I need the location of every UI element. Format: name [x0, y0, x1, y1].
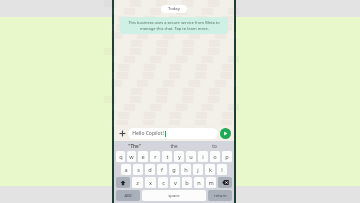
button[interactable]: a — [121, 164, 131, 175]
staticText: manage this chat. Tap to learn more. — [140, 26, 209, 31]
staticText: v — [174, 179, 177, 187]
button[interactable]: w — [127, 151, 136, 162]
staticText: This business uses a secure service from… — [128, 20, 220, 25]
button[interactable]: q — [116, 151, 125, 162]
staticText: the — [170, 143, 178, 149]
staticText: Today — [168, 6, 180, 12]
button[interactable]: to — [194, 141, 234, 150]
button[interactable]: g — [169, 164, 179, 175]
staticText: s — [137, 166, 140, 174]
staticText: space — [168, 193, 180, 199]
staticText: return — [214, 193, 227, 199]
button[interactable]: j — [193, 164, 203, 175]
button[interactable]: d — [145, 164, 155, 175]
staticText: f — [161, 166, 163, 174]
staticText: t — [166, 153, 169, 161]
button[interactable]: t — [162, 151, 172, 162]
button[interactable]: the — [154, 141, 194, 150]
staticText: to — [212, 143, 217, 149]
staticText: q — [119, 153, 123, 161]
button[interactable]: k — [205, 164, 215, 175]
staticText: x — [149, 179, 152, 187]
staticText: p — [225, 153, 229, 161]
button[interactable]: h — [181, 164, 191, 175]
staticText: g — [172, 166, 176, 174]
staticText: u — [189, 153, 193, 161]
staticText: j — [197, 166, 199, 174]
button[interactable]: Attach — [117, 128, 128, 139]
staticText: h — [184, 166, 188, 174]
button[interactable]: n — [194, 177, 204, 188]
button[interactable]: Hello Copilot! — [128, 128, 218, 139]
button[interactable]: c — [158, 177, 168, 188]
button[interactable]: x — [145, 177, 156, 188]
button[interactable]: "The" — [114, 141, 154, 150]
button[interactable]: v — [170, 177, 180, 188]
button[interactable]: Backspace — [218, 177, 232, 188]
button[interactable]: z — [132, 177, 143, 188]
staticText: z — [136, 179, 139, 187]
button[interactable]: Shift — [116, 177, 130, 188]
button[interactable]: Send — [220, 128, 231, 139]
staticText: y — [178, 153, 181, 161]
staticText: i — [202, 153, 204, 161]
staticText: c — [162, 179, 165, 187]
button[interactable]: b — [182, 177, 192, 188]
button[interactable]: This business uses a secure service from… — [120, 17, 228, 34]
staticText: r — [154, 153, 157, 161]
button[interactable]: u — [186, 151, 196, 162]
staticText: a — [124, 166, 128, 174]
staticText: k — [209, 166, 212, 174]
button[interactable]: m — [206, 177, 216, 188]
staticText: n — [197, 179, 201, 187]
button[interactable]: l — [217, 164, 227, 175]
button[interactable]: e — [138, 151, 148, 162]
staticText: d — [148, 166, 152, 174]
staticText: o — [213, 153, 217, 161]
staticText: Hello Copilot! — [132, 130, 164, 137]
staticText: w — [129, 153, 134, 161]
button[interactable]: p — [222, 151, 232, 162]
staticText: m — [208, 179, 214, 187]
staticText: l — [221, 166, 223, 174]
staticText: e — [141, 153, 145, 161]
button[interactable]: space — [142, 190, 206, 201]
staticText: "The" — [128, 143, 141, 149]
button[interactable]: i — [198, 151, 208, 162]
button[interactable]: o — [210, 151, 220, 162]
button[interactable]: ABC — [116, 190, 140, 201]
button[interactable]: return — [208, 190, 232, 201]
staticText: ABC — [124, 193, 133, 199]
button[interactable]: s — [133, 164, 143, 175]
staticText: b — [185, 179, 189, 187]
button[interactable]: y — [174, 151, 184, 162]
button[interactable]: Today — [161, 5, 187, 13]
button[interactable]: r — [150, 151, 160, 162]
button[interactable]: f — [157, 164, 167, 175]
